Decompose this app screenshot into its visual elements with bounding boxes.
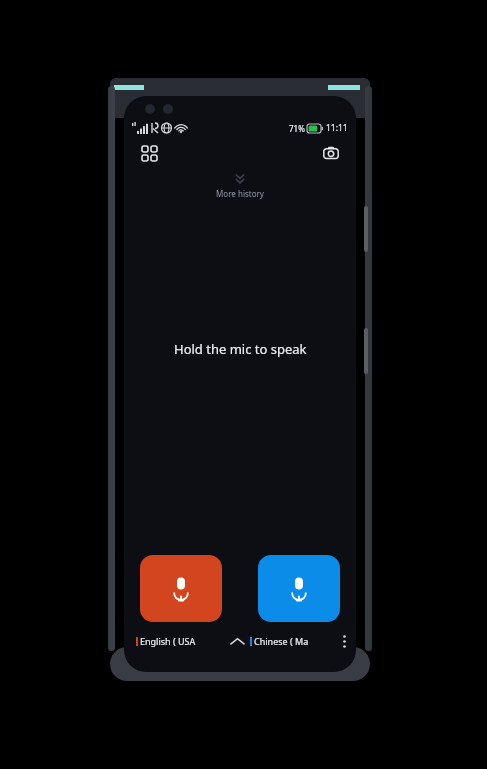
button[interactable]: More history bbox=[124, 174, 356, 199]
staticText: 71% bbox=[289, 123, 305, 134]
button[interactable]: English ( USA bbox=[136, 635, 224, 647]
staticText: English ( USA bbox=[140, 635, 196, 647]
button[interactable]: Speak English bbox=[140, 555, 222, 622]
button[interactable]: Speak Chinese bbox=[258, 555, 340, 622]
staticText: 11:11 bbox=[326, 122, 348, 134]
staticText: Hold the mic to speak bbox=[174, 340, 307, 358]
button[interactable]: Swap languages bbox=[224, 632, 250, 650]
button[interactable]: Chinese ( Ma bbox=[250, 635, 338, 647]
button[interactable]: Camera translate bbox=[318, 140, 344, 166]
staticText: Chinese ( Ma bbox=[254, 635, 309, 647]
staticText: More history bbox=[216, 188, 264, 199]
button[interactable]: Apps bbox=[136, 140, 162, 166]
button[interactable]: More options bbox=[338, 632, 350, 650]
